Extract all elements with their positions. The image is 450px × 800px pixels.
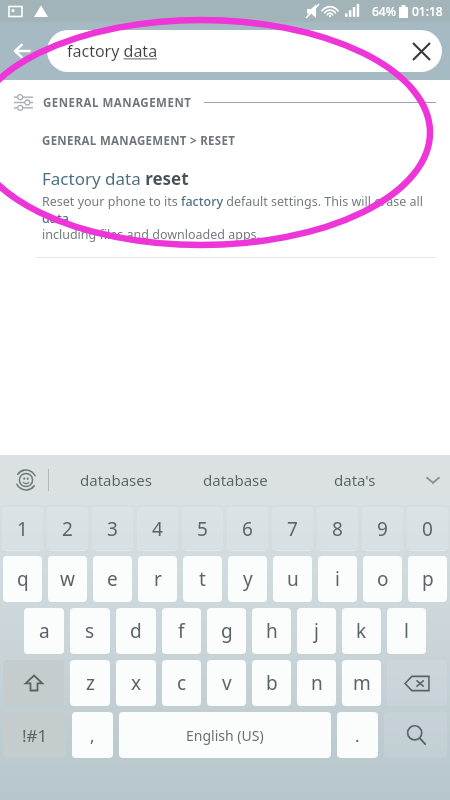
button[interactable]: 4 [137,507,178,551]
staticText: , [90,724,95,747]
button[interactable]: , [72,712,113,758]
button[interactable]: database [176,455,295,505]
staticText: 64% [372,3,396,19]
staticText: o [377,566,389,592]
button[interactable]: 3 [92,507,133,551]
button[interactable]: 1 [2,507,43,551]
staticText: 6 [242,516,253,542]
staticText: i [335,566,340,592]
button[interactable]: e [93,556,132,602]
button[interactable]: r [138,556,177,602]
staticText: l [404,618,409,644]
button[interactable]: i [318,556,357,602]
staticText: e [107,566,118,592]
button[interactable]: v [207,660,246,706]
staticText: w [60,566,75,592]
button[interactable]: 5 [182,507,223,551]
button[interactable]: 7 [272,507,313,551]
button[interactable]: x [116,660,156,706]
staticText: database [203,470,268,490]
staticText: z [86,670,95,696]
button[interactable]: data's [295,455,414,505]
button[interactable]: h [252,608,291,654]
button[interactable]: Clear search [400,30,442,72]
button[interactable]: t [183,556,222,602]
button[interactable]: 0 [407,507,448,551]
button[interactable]: 2 [47,507,88,551]
button[interactable]: More suggestions [416,463,450,497]
staticText: 5 [197,516,208,542]
button[interactable]: factory data [47,30,442,72]
button[interactable]: u [273,556,312,602]
staticText: 01:18 [412,3,443,19]
staticText: j [314,618,319,644]
staticText: 0 [422,516,433,542]
button[interactable]: f [162,608,201,654]
staticText: k [356,618,367,644]
button[interactable]: databases [56,455,176,505]
staticText: n [311,670,323,696]
staticText: q [17,566,29,592]
button[interactable]: k [342,608,381,654]
button[interactable]: w [48,556,87,602]
staticText: !#1 [22,724,48,747]
staticText: Factory data reset [42,167,189,190]
staticText: g [221,618,233,644]
button[interactable]: s [70,608,110,654]
staticText: 8 [332,516,343,542]
staticText: 3 [107,516,118,542]
button[interactable]: . [337,712,378,758]
staticText: u [287,566,299,592]
button[interactable]: n [297,660,336,706]
staticText: Reset your phone to its factory default … [42,193,430,242]
staticText: 9 [377,516,388,542]
button[interactable]: Emoji [8,462,44,498]
button[interactable]: m [342,660,381,706]
staticText: data's [334,470,376,490]
staticText: GENERAL MANAGEMENT [43,95,192,111]
staticText: d [130,618,142,644]
button[interactable]: q [3,556,42,602]
staticText: 2 [62,516,73,542]
button[interactable]: English (US) [119,712,331,758]
button[interactable]: g [207,608,246,654]
button[interactable]: y [228,556,267,602]
staticText: r [154,566,162,592]
button[interactable]: Search [384,712,447,758]
button[interactable]: Back [0,28,46,74]
staticText: databases [80,470,152,490]
staticText: f [178,618,185,644]
button[interactable]: z [70,660,110,706]
staticText: English (US) [186,726,264,745]
button[interactable]: l [387,608,426,654]
button[interactable]: Shift [3,660,64,706]
staticText: s [85,618,95,644]
staticText: x [131,670,142,696]
staticText: t [199,566,206,592]
staticText: 4 [152,516,163,542]
staticText: c [177,670,187,696]
button[interactable]: a [24,608,64,654]
button[interactable]: 9 [362,507,403,551]
button[interactable]: 6 [227,507,268,551]
staticText: h [266,618,278,644]
staticText: 7 [287,516,298,542]
staticText: 1 [17,516,28,542]
button[interactable]: o [363,556,402,602]
button[interactable]: GENERAL MANAGEMENT > RESET [0,133,450,258]
staticText: . [355,724,360,747]
button[interactable]: c [162,660,201,706]
button[interactable]: 8 [317,507,358,551]
button[interactable]: j [297,608,336,654]
staticText: p [422,566,434,592]
button[interactable]: !#1 [3,712,66,758]
staticText: y [243,566,253,592]
staticText: factory data [67,40,400,62]
button[interactable]: b [252,660,291,706]
button[interactable]: d [116,608,156,654]
button[interactable]: p [408,556,447,602]
staticText: v [222,670,232,696]
staticText: m [353,670,371,696]
staticText: a [39,618,50,644]
button[interactable]: Backspace [387,660,447,706]
